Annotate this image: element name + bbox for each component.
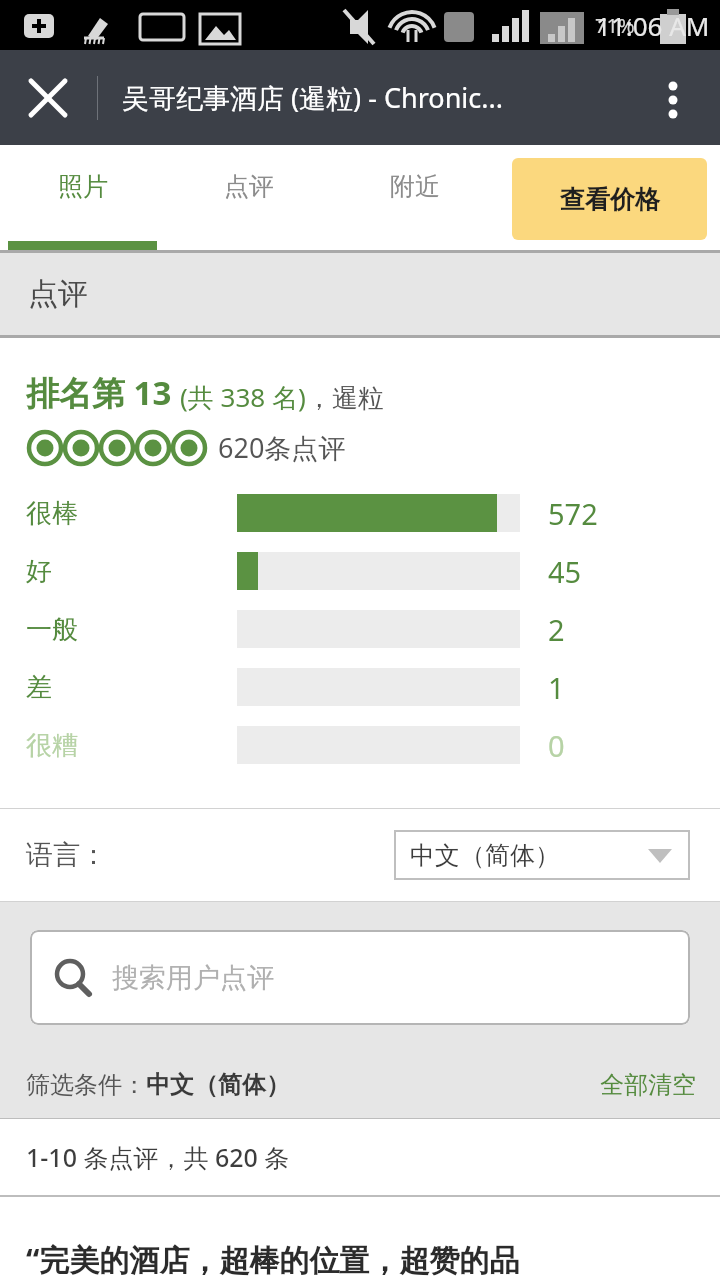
staticText: 71%	[595, 12, 635, 39]
staticText: 排名第 13	[26, 370, 180, 415]
staticText: 11:06 AM	[596, 8, 710, 43]
staticText: 572	[548, 494, 598, 533]
staticText: “完美的酒店，超棒的位置，超赞的品	[26, 1239, 520, 1280]
button[interactable]: 查看价格	[512, 158, 707, 240]
staticText: 搜索用户点评	[112, 961, 274, 995]
staticText: 很糟	[26, 729, 78, 762]
staticText: 语言：	[26, 838, 107, 872]
button[interactable]: 照片	[0, 145, 166, 250]
staticText: 筛选条件：	[26, 1070, 146, 1100]
staticText: 620条点评	[218, 429, 346, 466]
button[interactable]: Close	[0, 50, 95, 145]
staticText: 照片	[58, 171, 108, 202]
staticText: 很棒	[26, 497, 78, 530]
staticText: 吴哥纪事酒店 (暹粒) - Chronic...	[122, 79, 503, 116]
button[interactable]: 点评	[166, 145, 332, 250]
staticText: 一般	[26, 613, 78, 646]
staticText: 1	[548, 668, 565, 707]
button[interactable]: 附近	[332, 145, 498, 250]
button[interactable]: 全部清空	[600, 1070, 696, 1100]
staticText: 全部清空	[600, 1070, 696, 1100]
staticText: 0	[548, 726, 565, 765]
button[interactable]: More options	[625, 50, 720, 145]
staticText: 2	[548, 610, 565, 649]
staticText: 点评	[28, 275, 88, 313]
staticText: (共 338 名)	[180, 379, 306, 415]
staticText: 中文（简体）	[410, 840, 560, 871]
staticText: 45	[548, 552, 582, 591]
staticText: 查看价格	[560, 184, 660, 215]
staticText: ，暹粒	[306, 382, 384, 415]
staticText: 中文（简体）	[146, 1070, 290, 1100]
button[interactable]: 搜索用户点评	[30, 930, 690, 1025]
staticText: 1-10 条点评，共 620 条	[26, 1140, 290, 1174]
staticText: 好	[26, 555, 52, 588]
staticText: 点评	[224, 171, 274, 202]
button[interactable]: 中文（简体）	[394, 830, 690, 880]
staticText: 差	[26, 671, 52, 704]
staticText: 附近	[390, 171, 440, 202]
